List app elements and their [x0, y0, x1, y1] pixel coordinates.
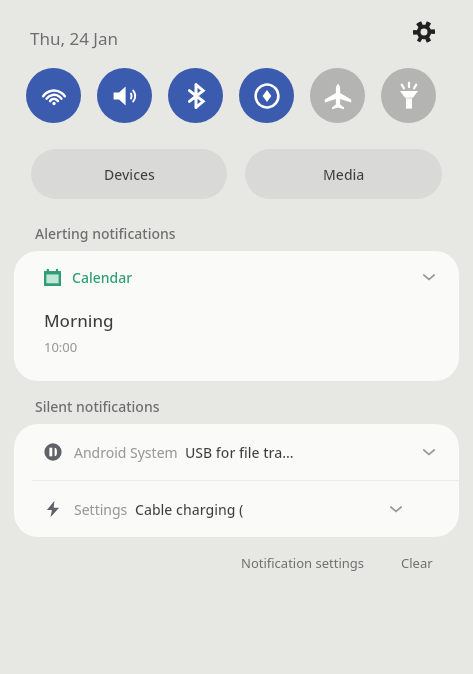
button[interactable]: Android System: [14, 424, 459, 480]
staticText: Devices: [104, 165, 155, 184]
button[interactable]: Airplane mode: [310, 68, 365, 123]
staticText: USB for file transfer: [185, 443, 302, 462]
staticText: Calendar: [72, 268, 133, 287]
button[interactable]: Flashlight: [381, 68, 436, 123]
staticText: Alerting notifications: [35, 224, 176, 243]
button[interactable]: Settings: [14, 481, 459, 537]
staticText: Clear: [401, 554, 433, 572]
button[interactable]: Media: [245, 149, 442, 199]
staticText: 10:00: [44, 338, 78, 356]
button[interactable]: Auto rotate: [239, 68, 294, 123]
button[interactable]: Bluetooth: [168, 68, 223, 123]
button[interactable]: Settings: [407, 15, 441, 49]
button[interactable]: Calendar: [14, 251, 459, 381]
button[interactable]: Devices: [31, 149, 227, 199]
staticText: Cable charging (: [135, 500, 244, 519]
staticText: Silent notifications: [35, 397, 160, 416]
staticText: Media: [323, 165, 365, 184]
staticText: Notification settings: [241, 554, 365, 572]
staticText: Settings: [74, 500, 128, 519]
staticText: Thu, 24 Jan: [30, 27, 118, 50]
button[interactable]: Wi-Fi: [26, 68, 81, 123]
staticText: Morning: [44, 309, 114, 332]
staticText: Android System: [74, 443, 178, 462]
button[interactable]: Notification settings: [231, 547, 375, 579]
button[interactable]: Sound: [97, 68, 152, 123]
button[interactable]: Clear: [391, 547, 443, 579]
